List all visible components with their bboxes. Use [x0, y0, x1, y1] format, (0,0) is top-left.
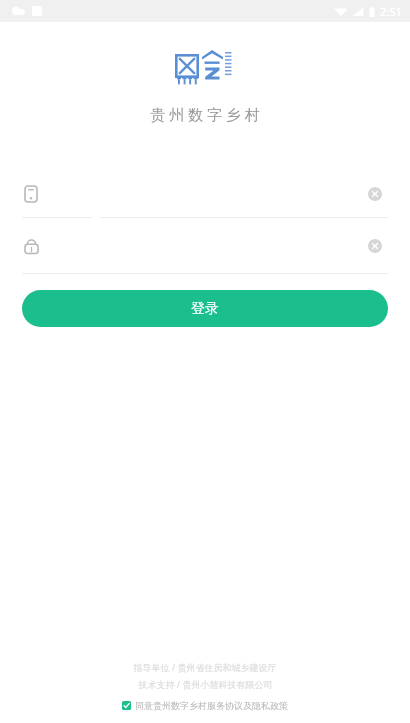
button[interactable]: Clear — [364, 235, 386, 257]
staticText: 技术支持 / 贵州小慧科技有限公司 — [138, 678, 273, 690]
button[interactable]: 登录 — [22, 290, 388, 327]
button[interactable]: Clear — [0, 218, 410, 274]
staticText: 2:51 — [380, 4, 402, 19]
staticText: 同意贵州数字乡村服务协议及隐私政策 — [135, 700, 288, 711]
button[interactable]: 同意贵州数字乡村服务协议及隐私政策 — [122, 700, 288, 711]
button[interactable]: Clear — [0, 170, 410, 218]
staticText: 指导单位 / 贵州省住房和城乡建设厅 — [133, 661, 277, 673]
button[interactable]: Clear — [364, 183, 386, 205]
staticText: 贵 州 数 字 乡 村 — [150, 104, 260, 124]
staticText: 登录 — [191, 300, 219, 318]
